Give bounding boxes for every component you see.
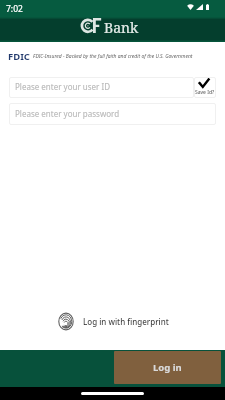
staticText: Save Id? xyxy=(195,89,215,96)
other: Save ID xyxy=(199,79,209,88)
button[interactable]: Save ID xyxy=(194,77,216,98)
button[interactable]: Please enter your user ID xyxy=(9,77,194,98)
staticText: Log in xyxy=(153,361,182,374)
button[interactable]: Log in xyxy=(114,351,221,384)
other: Log in with fingerprint xyxy=(57,312,75,331)
button[interactable]: Please enter your password xyxy=(9,103,216,125)
staticText: Log in with fingerprint xyxy=(83,316,169,327)
staticText: 7:02 xyxy=(6,3,23,15)
staticText: FDIC-Insured - Backed by the full faith … xyxy=(33,53,193,60)
staticText: FDIC xyxy=(8,50,30,63)
staticText: Please enter your user ID xyxy=(15,81,111,92)
staticText: Bank xyxy=(104,18,139,37)
staticText: Please enter your password xyxy=(15,108,120,119)
button[interactable]: Log in with fingerprint xyxy=(51,308,175,335)
